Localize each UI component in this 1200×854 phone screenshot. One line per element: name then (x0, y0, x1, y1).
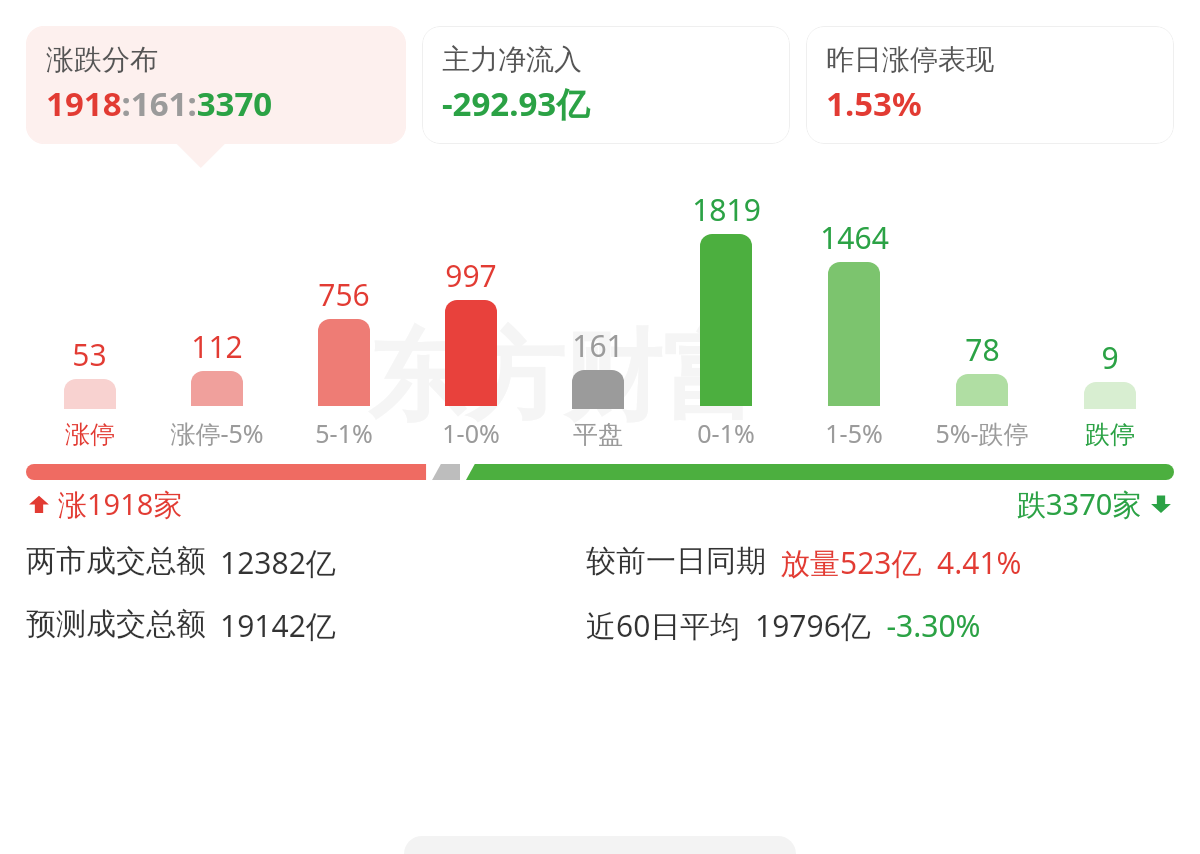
staticText: 两市成交总额 (26, 542, 206, 580)
button[interactable]: 9 (1046, 178, 1174, 450)
staticText: -292.93亿 (442, 81, 590, 126)
button[interactable]: 53 (26, 178, 153, 450)
staticText: 平盘 (573, 419, 623, 450)
staticText: 东方财富 (368, 316, 760, 439)
button[interactable]: 跌3370家 (1017, 484, 1174, 524)
button[interactable]: 997 (407, 178, 534, 450)
staticText: 1-0% (442, 416, 500, 450)
staticText: 较前一日同期 (586, 542, 766, 580)
staticText: 1464 (820, 217, 889, 258)
staticText: 1.53% (826, 81, 922, 126)
staticText: 161 (572, 325, 624, 366)
staticText: 近60日平均 (586, 605, 741, 646)
staticText: 放量523亿 4.41% (780, 542, 1022, 583)
staticText: 主力净流入 (442, 42, 582, 77)
staticText: 跌3370家 (1017, 484, 1142, 524)
staticText: 12382亿 (220, 542, 336, 583)
button[interactable]: 756 (280, 178, 407, 450)
staticText: 涨1918家 (58, 484, 183, 524)
button[interactable]: 涨跌分布 (26, 26, 406, 144)
staticText: 756 (318, 274, 370, 315)
staticText: 涨跌分布 (46, 42, 158, 77)
button[interactable]: 涨1918家 (26, 484, 183, 524)
button[interactable]: 78 (918, 178, 1046, 450)
button[interactable]: 预测成交总额 (26, 605, 1174, 646)
staticText: 112 (191, 326, 243, 367)
staticText: 5%-跌停 (935, 416, 1029, 450)
staticText: 1-5% (825, 416, 883, 450)
staticText: 53 (72, 334, 107, 375)
staticText: 997 (445, 255, 497, 296)
button[interactable]: 两市成交总额 (26, 542, 1174, 583)
staticText: 5-1% (315, 416, 373, 450)
staticText: 预测成交总额 (26, 605, 206, 643)
button[interactable]: 1819 (662, 178, 790, 450)
staticText: 跌停 (1085, 419, 1135, 450)
other: 涨跌家数比例 (26, 464, 1174, 480)
staticText: 1819 (692, 189, 761, 230)
staticText: 19796亿 -3.30% (755, 605, 981, 646)
button[interactable]: 主力净流入 (422, 26, 790, 144)
staticText: 1918:161:3370 (46, 81, 273, 126)
button[interactable]: 1464 (790, 178, 918, 450)
staticText: 9 (1101, 337, 1119, 378)
button[interactable]: 161 (534, 178, 662, 450)
staticText: 涨停-5% (170, 416, 264, 450)
button[interactable]: 112 (153, 178, 280, 450)
staticText: 0-1% (697, 416, 755, 450)
staticText: 涨停 (65, 419, 115, 450)
staticText: 78 (965, 329, 1000, 370)
button[interactable]: 昨日涨停表现 (806, 26, 1174, 144)
staticText: 19142亿 (220, 605, 336, 646)
staticText: 昨日涨停表现 (826, 42, 994, 77)
